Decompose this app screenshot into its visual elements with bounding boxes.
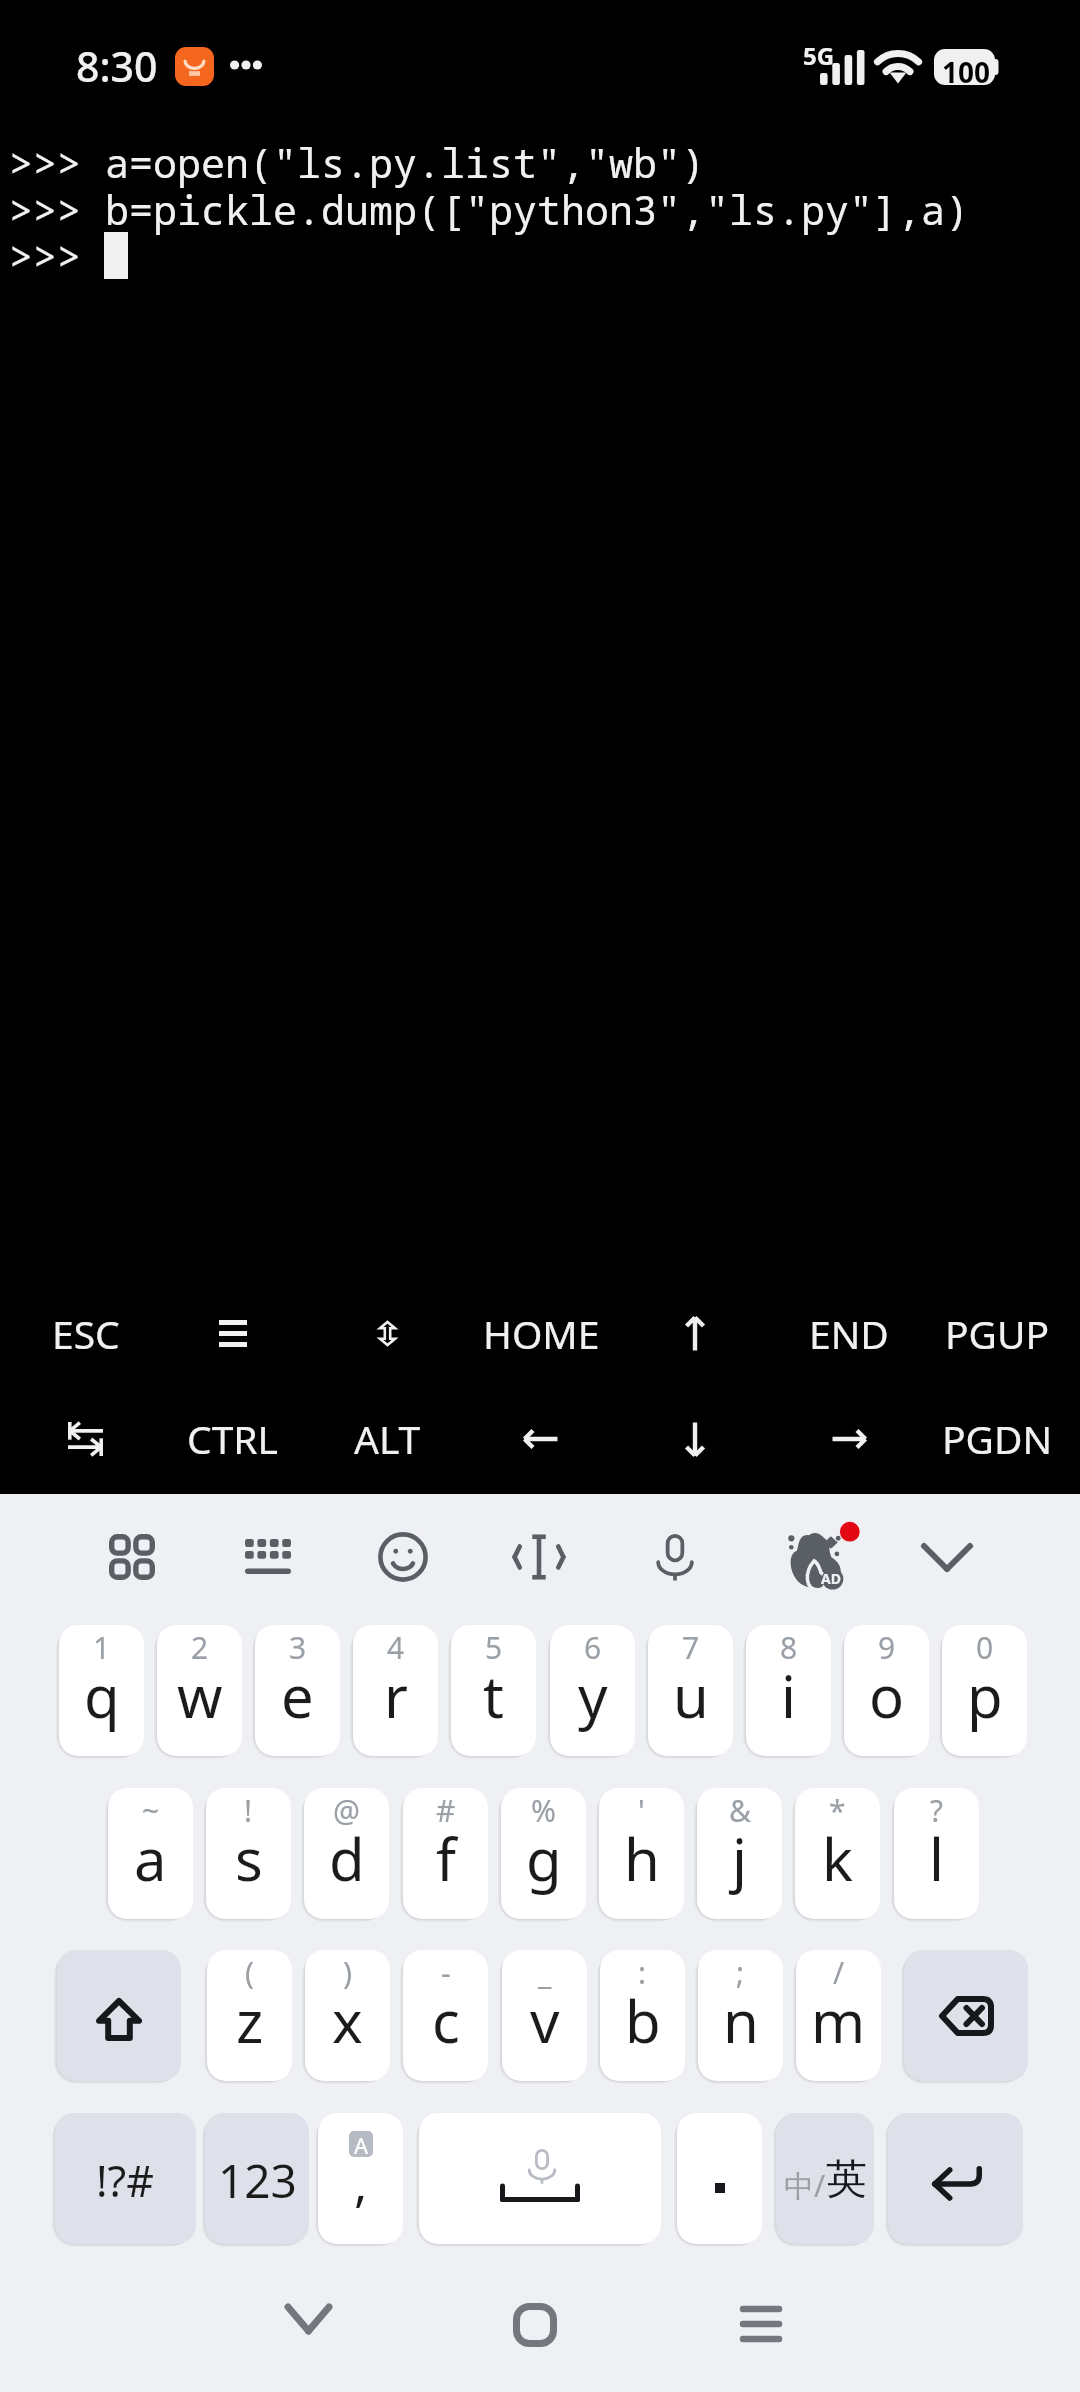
button[interactable]: * [795,1788,880,1919]
button[interactable]: Right [772,1386,926,1491]
button[interactable]: : [600,1950,685,2081]
button[interactable]: CTRL [155,1386,310,1491]
button[interactable]: 2 [157,1625,242,1756]
button[interactable]: / [796,1950,881,2081]
staticText: * [829,1790,846,1831]
other: Tab [68,1422,103,1456]
staticText: ~ [142,1790,160,1831]
button[interactable]: Comma [318,2113,403,2244]
button[interactable]: 6 [550,1625,635,1756]
button[interactable]: 123 [205,2113,309,2244]
button[interactable]: Tab [0,1386,155,1491]
button[interactable]: Down [618,1386,772,1491]
button[interactable]: ESC [0,1281,155,1386]
staticText: PGDN [942,1412,1053,1465]
staticText: PGUP [945,1307,1050,1360]
staticText: 英 [826,2154,867,2206]
button[interactable]: Keyboard layout [220,1509,316,1605]
staticText: ALT [354,1412,421,1465]
other: Right [831,1421,867,1457]
button[interactable]: HOME [464,1281,618,1386]
button[interactable]: 8 [746,1625,831,1756]
button[interactable]: ( [207,1950,292,2081]
staticText: ; [736,1952,745,1993]
button[interactable]: 1 [59,1625,144,1756]
button[interactable]: Enter [888,2113,1023,2244]
staticText: ) [343,1952,352,1993]
button[interactable]: PGUP [926,1281,1080,1386]
other: Up down [380,1322,395,1345]
button[interactable]: Shift [57,1950,181,2081]
button[interactable]: ? [894,1788,979,1919]
button[interactable]: 4 [353,1625,438,1756]
staticText: a [134,1819,167,1898]
button[interactable]: ~ [108,1788,193,1919]
button[interactable]: Backspace [904,1950,1028,2081]
staticText: k [822,1819,853,1898]
button[interactable]: 9 [844,1625,929,1756]
button[interactable]: 0 [942,1625,1027,1756]
button[interactable]: END [772,1281,926,1386]
button[interactable]: @ [304,1788,389,1919]
button[interactable]: Up [618,1281,772,1386]
button[interactable]: Space [419,2113,661,2244]
staticText: % [531,1790,556,1831]
staticText: >>> b=pickle.dump(["python3","ls.py"],a) [9,182,969,236]
button[interactable]: Hide keyboard [258,2280,358,2380]
button[interactable]: Hide keyboard [899,1509,995,1605]
staticText: 中/ [784,2165,826,2206]
button[interactable]: _ [502,1950,587,2081]
button[interactable]: Voice input [627,1509,723,1605]
button[interactable]: !?# [55,2113,196,2244]
button[interactable]: Move cursor [491,1509,587,1605]
button[interactable]: ) [305,1950,390,2081]
staticText: 5G [803,39,835,72]
button[interactable]: ALT [310,1386,464,1491]
button[interactable]: PGDN [926,1386,1080,1491]
button[interactable]: ' [599,1788,684,1919]
staticText: 8 [780,1627,798,1668]
button[interactable]: Emoji [355,1509,451,1605]
staticText: ' [638,1790,645,1831]
button[interactable]: 3 [255,1625,340,1756]
staticText: A [354,2131,369,2156]
staticText: t [483,1656,504,1735]
staticText: 9 [878,1627,896,1668]
button[interactable]: Home [485,2280,585,2380]
button[interactable]: Theme [763,1509,859,1605]
staticText: 123 [218,2149,297,2212]
other: Up [677,1316,713,1352]
button[interactable]: # [403,1788,488,1919]
button[interactable]: Switch language [776,2113,874,2244]
button[interactable]: 5 [451,1625,536,1756]
button[interactable]: Period [677,2113,762,2244]
staticText: 5 [485,1627,503,1668]
button[interactable]: Apps [84,1509,180,1605]
other: Down [677,1421,713,1457]
staticText: x [332,1981,363,2060]
staticText: !?# [96,2151,155,2210]
button[interactable]: Left [464,1386,618,1491]
button[interactable]: Up down [310,1281,464,1386]
staticText: @ [333,1790,360,1831]
staticText: 0 [976,1627,994,1668]
button[interactable]: % [501,1788,586,1919]
staticText: c [432,1981,460,2060]
button[interactable]: Recent apps [711,2280,811,2380]
button[interactable]: - [403,1950,488,2081]
staticText: 100 [942,53,991,91]
staticText: ! [244,1790,253,1831]
staticText: : [638,1952,647,1993]
staticText: q [84,1656,120,1735]
staticText: ? [930,1790,944,1831]
button[interactable]: 7 [648,1625,733,1756]
button[interactable]: ! [206,1788,291,1919]
staticText: & [729,1790,751,1831]
staticText: 8:30 [76,38,158,94]
button[interactable]: & [697,1788,782,1919]
staticText: >>> [9,228,105,282]
button[interactable]: Menu [155,1281,310,1386]
other: Menu [219,1320,247,1347]
staticText: 2 [191,1627,209,1668]
button[interactable]: ; [698,1950,783,2081]
